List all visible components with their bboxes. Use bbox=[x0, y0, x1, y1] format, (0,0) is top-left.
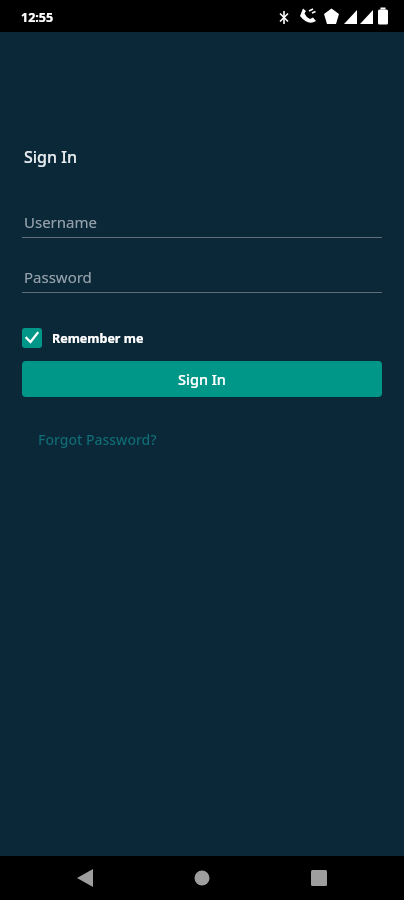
staticText: 12:55 bbox=[21, 9, 54, 26]
button[interactable] bbox=[62, 858, 102, 898]
staticText: Sign In bbox=[178, 369, 226, 389]
button[interactable]: Username bbox=[22, 210, 382, 238]
staticText: Remember me bbox=[52, 330, 144, 347]
button[interactable]: Forgot Password? bbox=[26, 424, 169, 455]
button[interactable]: Remember me bbox=[22, 328, 144, 348]
staticText: Username bbox=[24, 212, 97, 232]
staticText: Password bbox=[24, 267, 92, 287]
button[interactable] bbox=[182, 858, 222, 898]
staticText: Forgot Password? bbox=[38, 430, 157, 449]
staticText: Sign In bbox=[24, 146, 77, 168]
button[interactable] bbox=[299, 858, 339, 898]
button[interactable]: Sign In bbox=[22, 361, 382, 397]
button[interactable]: Password bbox=[22, 265, 382, 293]
